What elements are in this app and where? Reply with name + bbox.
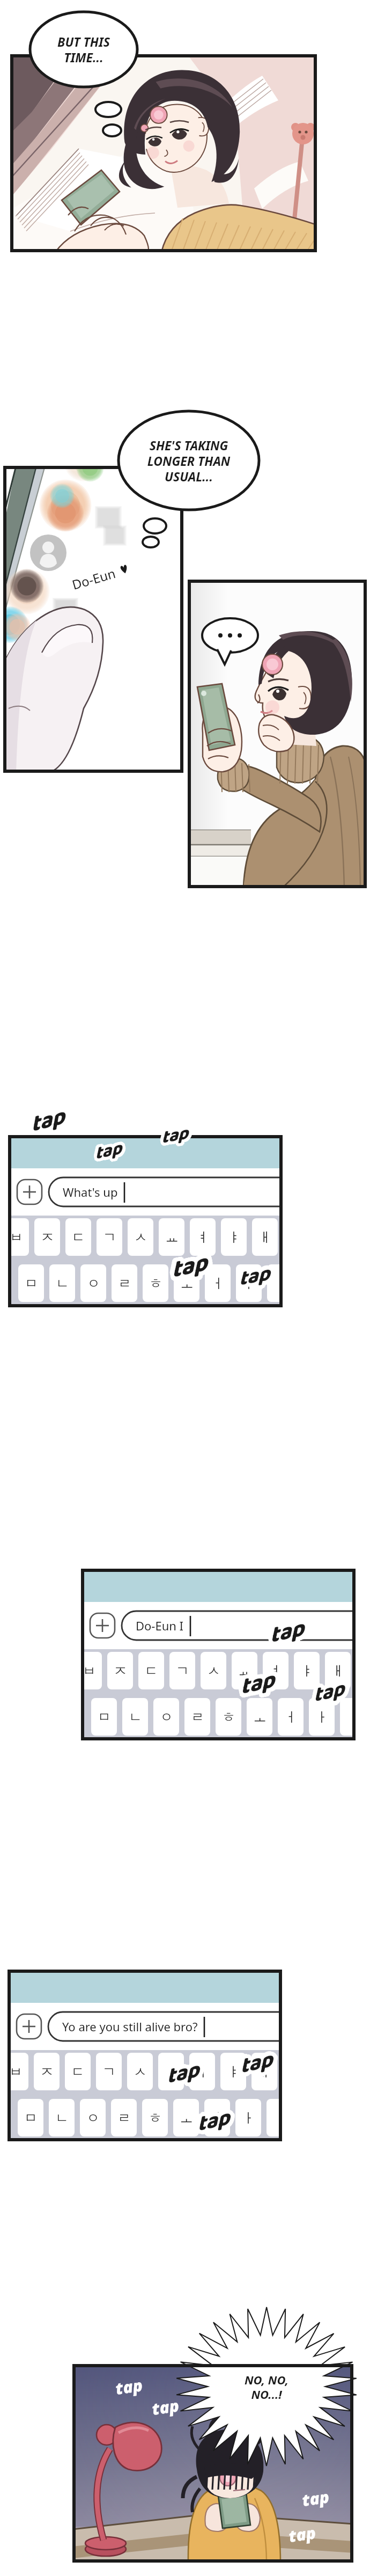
- button[interactable]: [0, 0, 370, 2576]
